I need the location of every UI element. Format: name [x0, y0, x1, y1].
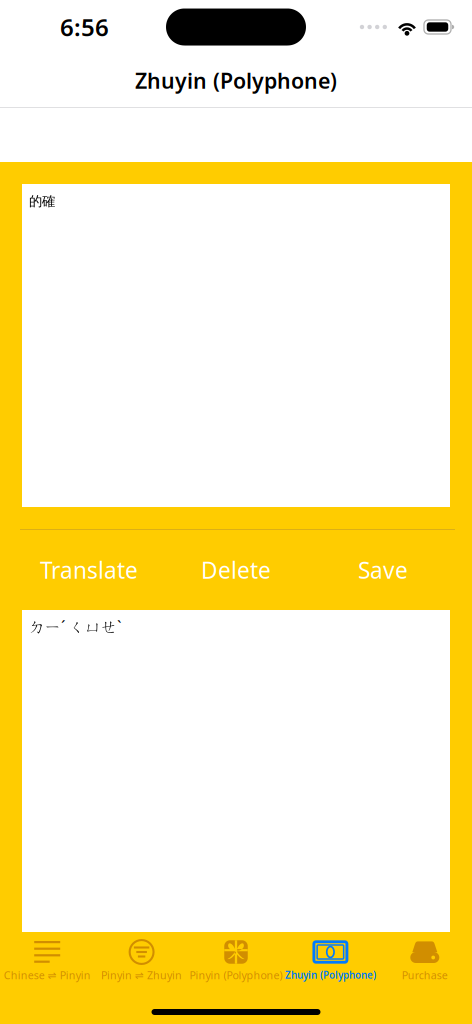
button[interactable]: Save [309, 550, 456, 590]
staticText: Zhuyin (Polyphone) [285, 968, 376, 981]
staticText: Zhuyin (Polyphone) [135, 66, 337, 95]
staticText: Chinese ⇌ Pinyin [4, 968, 91, 982]
staticText: Delete [201, 555, 271, 585]
button[interactable]: Translate [15, 550, 162, 590]
staticText: Save [358, 555, 408, 585]
staticText: Pinyin (Polyphone) [189, 968, 282, 982]
button[interactable]: Chinese ⇌ Pinyin [0, 932, 94, 983]
button[interactable]: Purchase [378, 932, 472, 983]
button[interactable]: Pinyin (Polyphone) [189, 932, 283, 983]
staticText: Pinyin ⇌ Zhuyin [101, 968, 182, 982]
staticText: ㄉㄧˊ ㄑㄩㄝˋ [29, 616, 121, 637]
button[interactable]: Pinyin ⇌ Zhuyin [94, 932, 189, 983]
button[interactable]: Zhuyin (Polyphone) [283, 932, 378, 983]
staticText: 的確 [29, 193, 55, 209]
staticText: Purchase [402, 968, 448, 982]
staticText: 6:56 [60, 11, 109, 43]
button[interactable]: Delete [162, 550, 309, 590]
staticText: Translate [40, 555, 138, 585]
